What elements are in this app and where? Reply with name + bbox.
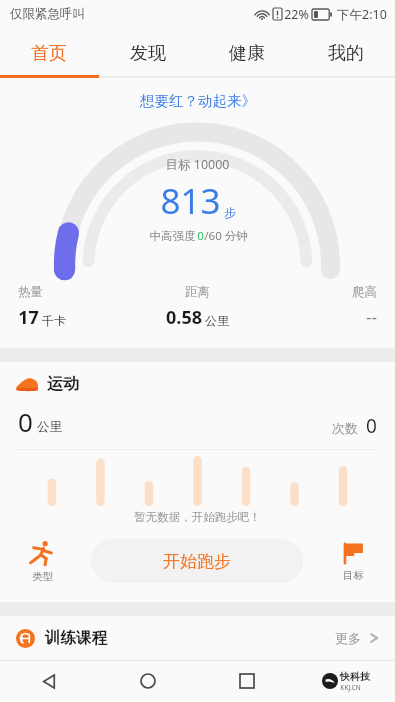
staticText: -- xyxy=(366,305,377,328)
button[interactable]: 健康 xyxy=(197,28,296,78)
staticText: 中高强度 xyxy=(148,228,197,244)
staticText: 0 xyxy=(197,228,204,244)
button[interactable]: 我的 xyxy=(296,28,395,78)
button[interactable]: 首页 xyxy=(0,28,98,78)
staticText: 目标 xyxy=(343,569,364,582)
staticText: 17 xyxy=(18,305,39,330)
staticText: 步 xyxy=(224,205,236,220)
button[interactable]: Goal xyxy=(323,541,383,582)
staticText: 22% xyxy=(284,6,309,23)
staticText: 目标 10000 xyxy=(165,156,230,173)
staticText: 快科技 xyxy=(340,670,370,683)
button[interactable]: Training xyxy=(0,616,395,660)
staticText: 距离 xyxy=(185,284,210,300)
staticText: 公里 xyxy=(205,313,229,328)
staticText: 热量 xyxy=(18,284,43,300)
staticText: 813 xyxy=(160,177,221,225)
button[interactable]: 开始跑步 xyxy=(91,539,303,583)
staticText: 类型 xyxy=(32,570,53,583)
staticText: 运动 xyxy=(47,374,79,394)
button[interactable]: 爬高 xyxy=(257,284,377,328)
staticText: 千卡 xyxy=(42,313,66,328)
staticText: 公里 xyxy=(37,419,62,435)
staticText: 发现 xyxy=(130,42,166,65)
staticText: 仅限紧急呼叫 xyxy=(10,6,85,22)
staticText: 0 xyxy=(18,404,33,439)
staticText: 次数 xyxy=(332,420,358,436)
button[interactable]: 发现 xyxy=(98,28,197,78)
staticText: 我的 xyxy=(328,42,364,65)
other: Sport xyxy=(16,377,38,391)
staticText: 首页 xyxy=(31,42,67,65)
button[interactable]: Home xyxy=(98,660,197,702)
staticText: 0 xyxy=(366,413,377,439)
button[interactable]: 距离 xyxy=(137,284,257,330)
staticText: 暂无数据，开始跑步吧！ xyxy=(134,510,261,524)
staticText: 开始跑步 xyxy=(163,551,231,572)
button[interactable]: Type xyxy=(12,540,72,583)
other: Goal xyxy=(340,541,366,565)
staticText: /60 分钟 xyxy=(204,228,248,244)
staticText: 更多 xyxy=(335,630,361,646)
button[interactable]: 想要红？动起来》 xyxy=(0,92,395,110)
button[interactable]: 热量 xyxy=(18,284,137,330)
staticText: 下午2:10 xyxy=(337,6,387,23)
other: Type xyxy=(29,540,55,566)
other: Training xyxy=(16,629,35,648)
staticText: 爬高 xyxy=(352,284,377,300)
staticText: KKJ.CN xyxy=(340,683,361,692)
button[interactable]: Sport xyxy=(0,374,395,394)
button[interactable]: Back xyxy=(0,660,98,702)
staticText: 训练课程 xyxy=(45,628,107,648)
staticText: 想要红？动起来》 xyxy=(140,92,256,110)
staticText: 健康 xyxy=(229,42,265,65)
button[interactable]: Recents xyxy=(197,660,296,702)
staticText: 0.58 xyxy=(166,305,202,330)
